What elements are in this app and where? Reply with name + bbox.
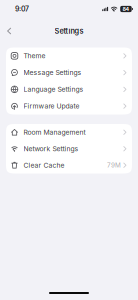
staticText: Clear Cache <box>23 161 64 169</box>
staticText: 9:07 <box>15 5 29 13</box>
staticText: Network Settings <box>23 145 78 153</box>
button[interactable]: Clear Cache <box>6 157 132 173</box>
staticText: Message Settings <box>23 68 81 77</box>
button[interactable]: Back <box>0 28 11 34</box>
button[interactable]: Network Settings <box>6 140 132 157</box>
button[interactable]: Language Settings <box>6 81 132 98</box>
button[interactable]: Theme <box>6 47 132 64</box>
staticText: Firmware Update <box>23 102 79 110</box>
staticText: Language Settings <box>23 85 83 93</box>
button[interactable]: Room Management <box>6 124 132 140</box>
staticText: Settings <box>54 27 83 35</box>
staticText: 84 <box>122 6 129 12</box>
staticText: 79M <box>107 161 121 169</box>
button[interactable]: Firmware Update <box>6 98 132 115</box>
staticText: Theme <box>23 52 45 60</box>
button[interactable]: Message Settings <box>6 64 132 81</box>
staticText: Room Management <box>23 128 85 136</box>
